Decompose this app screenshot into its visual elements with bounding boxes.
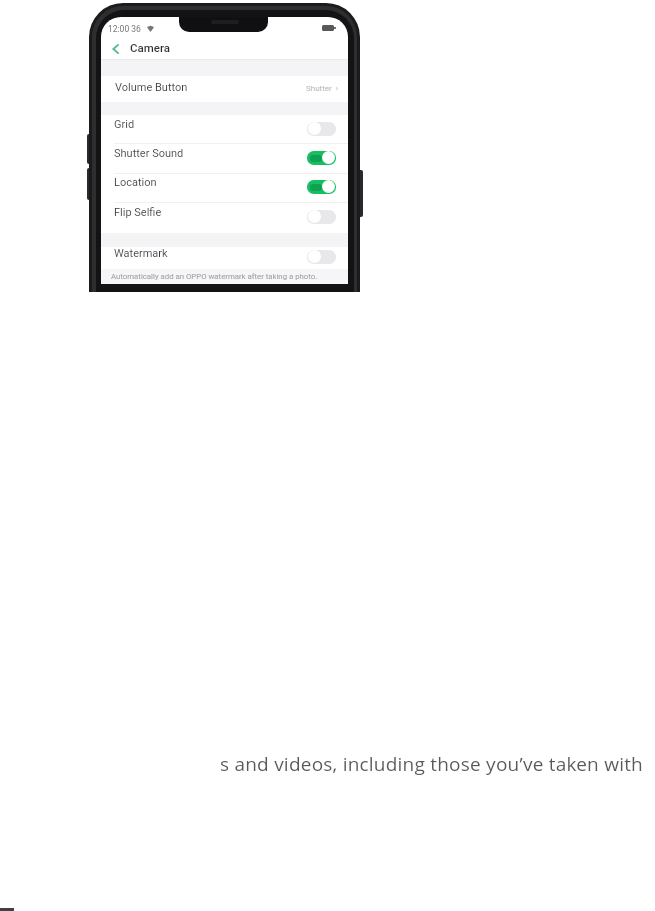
staticText: Shutter Sound [114, 147, 184, 160]
staticText: Grid [114, 118, 135, 131]
staticText: Shutter › [306, 84, 339, 93]
staticText: Watermark [114, 247, 168, 260]
staticText: Location [114, 176, 157, 189]
staticText: s and videos, including those you’ve tak… [220, 751, 643, 777]
staticText: Camera [130, 41, 171, 54]
staticText: Volume Button [115, 81, 188, 94]
staticText: Automatically add an OPPO watermark afte… [111, 272, 318, 281]
staticText: 12:00 36 [108, 24, 141, 34]
staticText: Flip Selfie [114, 206, 162, 219]
